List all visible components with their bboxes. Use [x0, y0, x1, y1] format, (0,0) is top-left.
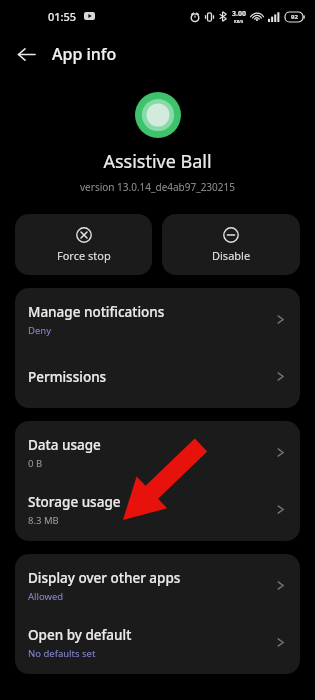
staticText: Permissions	[28, 368, 107, 386]
staticText: 92	[291, 13, 298, 21]
button[interactable]: Data usage	[15, 424, 300, 481]
button[interactable]: Force stop	[15, 214, 152, 275]
staticText: 3.00	[232, 9, 246, 19]
staticText: Assistive Ball	[103, 149, 212, 174]
staticText: 01:55	[48, 9, 77, 24]
staticText: 0 B	[28, 457, 43, 470]
button[interactable]: Open by default	[15, 614, 300, 671]
staticText: Disable	[212, 248, 251, 263]
staticText: Force stop	[57, 248, 111, 263]
button[interactable]: Back	[8, 36, 44, 72]
staticText: Deny	[28, 324, 52, 337]
staticText: Data usage	[28, 436, 101, 454]
staticText: version 13.0.14_de4ab97_230215	[80, 180, 235, 194]
button[interactable]: Manage notifications	[15, 291, 300, 348]
staticText: KB/S	[234, 19, 244, 24]
button[interactable]: Disable	[162, 214, 300, 275]
button[interactable]: Permissions	[15, 348, 300, 405]
staticText: Display over other apps	[28, 569, 181, 587]
button[interactable]: Storage usage	[15, 481, 300, 538]
staticText: 8.3 MB	[28, 514, 59, 527]
staticText: No defaults set	[28, 647, 96, 660]
staticText: Storage usage	[28, 493, 121, 511]
staticText: Manage notifications	[28, 303, 165, 321]
button[interactable]: Display over other apps	[15, 557, 300, 614]
staticText: App info	[52, 43, 117, 65]
staticText: Allowed	[28, 590, 64, 603]
staticText: Open by default	[28, 626, 132, 644]
